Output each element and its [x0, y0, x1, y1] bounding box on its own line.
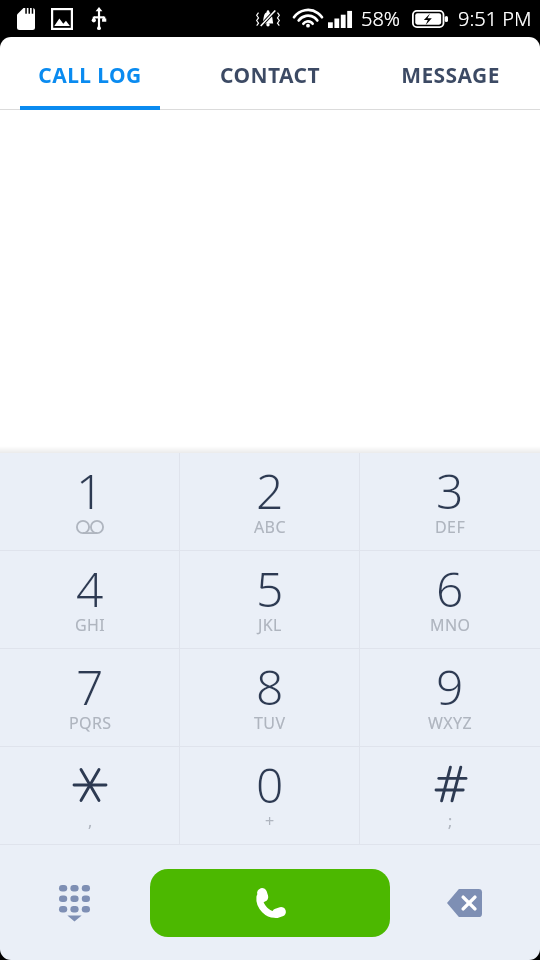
staticText: 5 — [256, 556, 284, 621]
button[interactable]: 3 — [360, 453, 540, 550]
staticText: CALL LOG — [38, 61, 142, 90]
button[interactable]: Hide keypad — [46, 875, 102, 931]
staticText: TUV — [254, 712, 286, 734]
button[interactable]: pound — [360, 747, 540, 844]
staticText: PQRS — [69, 712, 112, 734]
staticText: 2 — [256, 458, 284, 523]
staticText: 58% — [361, 5, 401, 32]
staticText: 0 — [256, 752, 284, 817]
staticText: ; — [448, 810, 453, 832]
button[interactable]: 5 — [180, 551, 360, 648]
staticText: 1 — [76, 458, 104, 523]
staticText: 3 — [436, 458, 464, 523]
staticText: CONTACT — [220, 61, 320, 90]
button[interactable]: 0 — [180, 747, 360, 844]
staticText: + — [265, 810, 275, 832]
staticText: GHI — [75, 614, 106, 636]
button[interactable]: MESSAGE — [360, 37, 540, 110]
staticText: 9 — [436, 654, 464, 719]
staticText: 4 — [76, 556, 104, 621]
staticText: MESSAGE — [401, 61, 500, 90]
button[interactable]: Backspace — [436, 875, 492, 931]
button[interactable]: 8 — [180, 649, 360, 746]
staticText: ABC — [254, 516, 286, 538]
staticText: 7 — [76, 654, 104, 719]
button[interactable]: star — [0, 747, 180, 844]
staticText: 6 — [436, 556, 464, 621]
button[interactable]: 6 — [360, 551, 540, 648]
staticText: , — [88, 810, 93, 832]
button[interactable]: CALL LOG — [0, 37, 180, 110]
button[interactable]: 2 — [180, 453, 360, 550]
staticText: 8 — [256, 654, 284, 719]
button[interactable]: Call — [150, 869, 390, 937]
staticText: DEF — [435, 516, 466, 538]
staticText: MNO — [430, 614, 471, 636]
button[interactable]: 1 — [0, 453, 180, 550]
button[interactable]: 4 — [0, 551, 180, 648]
button[interactable]: 9 — [360, 649, 540, 746]
staticText: 9:51 PM — [458, 5, 532, 32]
staticText: WXYZ — [428, 712, 473, 734]
button[interactable]: 7 — [0, 649, 180, 746]
staticText: JKL — [258, 614, 282, 636]
button[interactable]: CONTACT — [180, 37, 360, 110]
